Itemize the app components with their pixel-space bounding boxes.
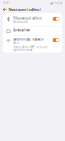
button[interactable]: Správa aplikací [3,26,62,36]
button[interactable]: Synchronizace nastavení [3,36,62,53]
staticText: Synchronizace nastavení [13,38,44,41]
staticText: Připomenutí sdílení [13,17,42,20]
staticText: Nastavení sdílení [8,7,40,12]
staticText: Wi-Fi [13,41,19,45]
staticText: Bluetooth [13,20,28,24]
button[interactable]: Zpět [3,7,7,12]
staticText: synchronizovat. [13,48,33,52]
button[interactable]: Připomenutí sdílení [3,13,62,26]
staticText: Data a zálohy WEP nebude [13,45,48,49]
staticText: 9:41 [3,1,10,5]
staticText: Správa aplikací [13,28,30,32]
